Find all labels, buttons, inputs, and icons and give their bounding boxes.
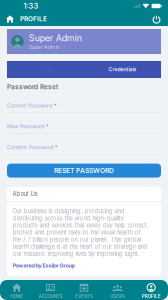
staticText: RESET PASSWORD: [54, 167, 114, 175]
staticText: Password Reset: [7, 83, 58, 91]
staticText: Super Admin: [29, 44, 60, 50]
staticText: *: [53, 144, 58, 151]
staticText: HOME: [10, 293, 23, 299]
staticText: PROFILE: [20, 15, 47, 23]
staticText: Credentials: [108, 66, 136, 72]
button[interactable]: HOME: [0, 280, 34, 300]
button[interactable]: USERS: [101, 280, 134, 300]
button[interactable]: Credentials: [84, 61, 161, 78]
button[interactable]: PROFILE: [134, 280, 168, 300]
staticText: Current Password: [7, 102, 52, 109]
staticText: About Us: [12, 190, 37, 197]
button[interactable]: Log out: [146, 12, 168, 26]
staticText: Super Admin: [29, 33, 82, 43]
staticText: 1:33: [23, 2, 38, 10]
staticText: PROFILE: [142, 293, 161, 299]
staticText: *: [44, 123, 49, 130]
staticText: Powered by Essilor Group: [12, 262, 74, 269]
button[interactable]: ACCOUNTS: [34, 280, 67, 300]
staticText: USERS: [110, 293, 125, 299]
staticText: ACCOUNTS: [38, 293, 62, 299]
staticText: *: [52, 102, 57, 109]
staticText: Confirm Password: [7, 144, 53, 151]
button[interactable]: EVENTS: [67, 280, 101, 300]
staticText: Our business is designing, producing and…: [12, 208, 148, 257]
staticText: EVENTS: [75, 293, 93, 299]
button[interactable]: Home: [0, 12, 20, 26]
button[interactable]: RESET PASSWORD: [7, 164, 161, 178]
staticText: New Password: [7, 123, 44, 130]
